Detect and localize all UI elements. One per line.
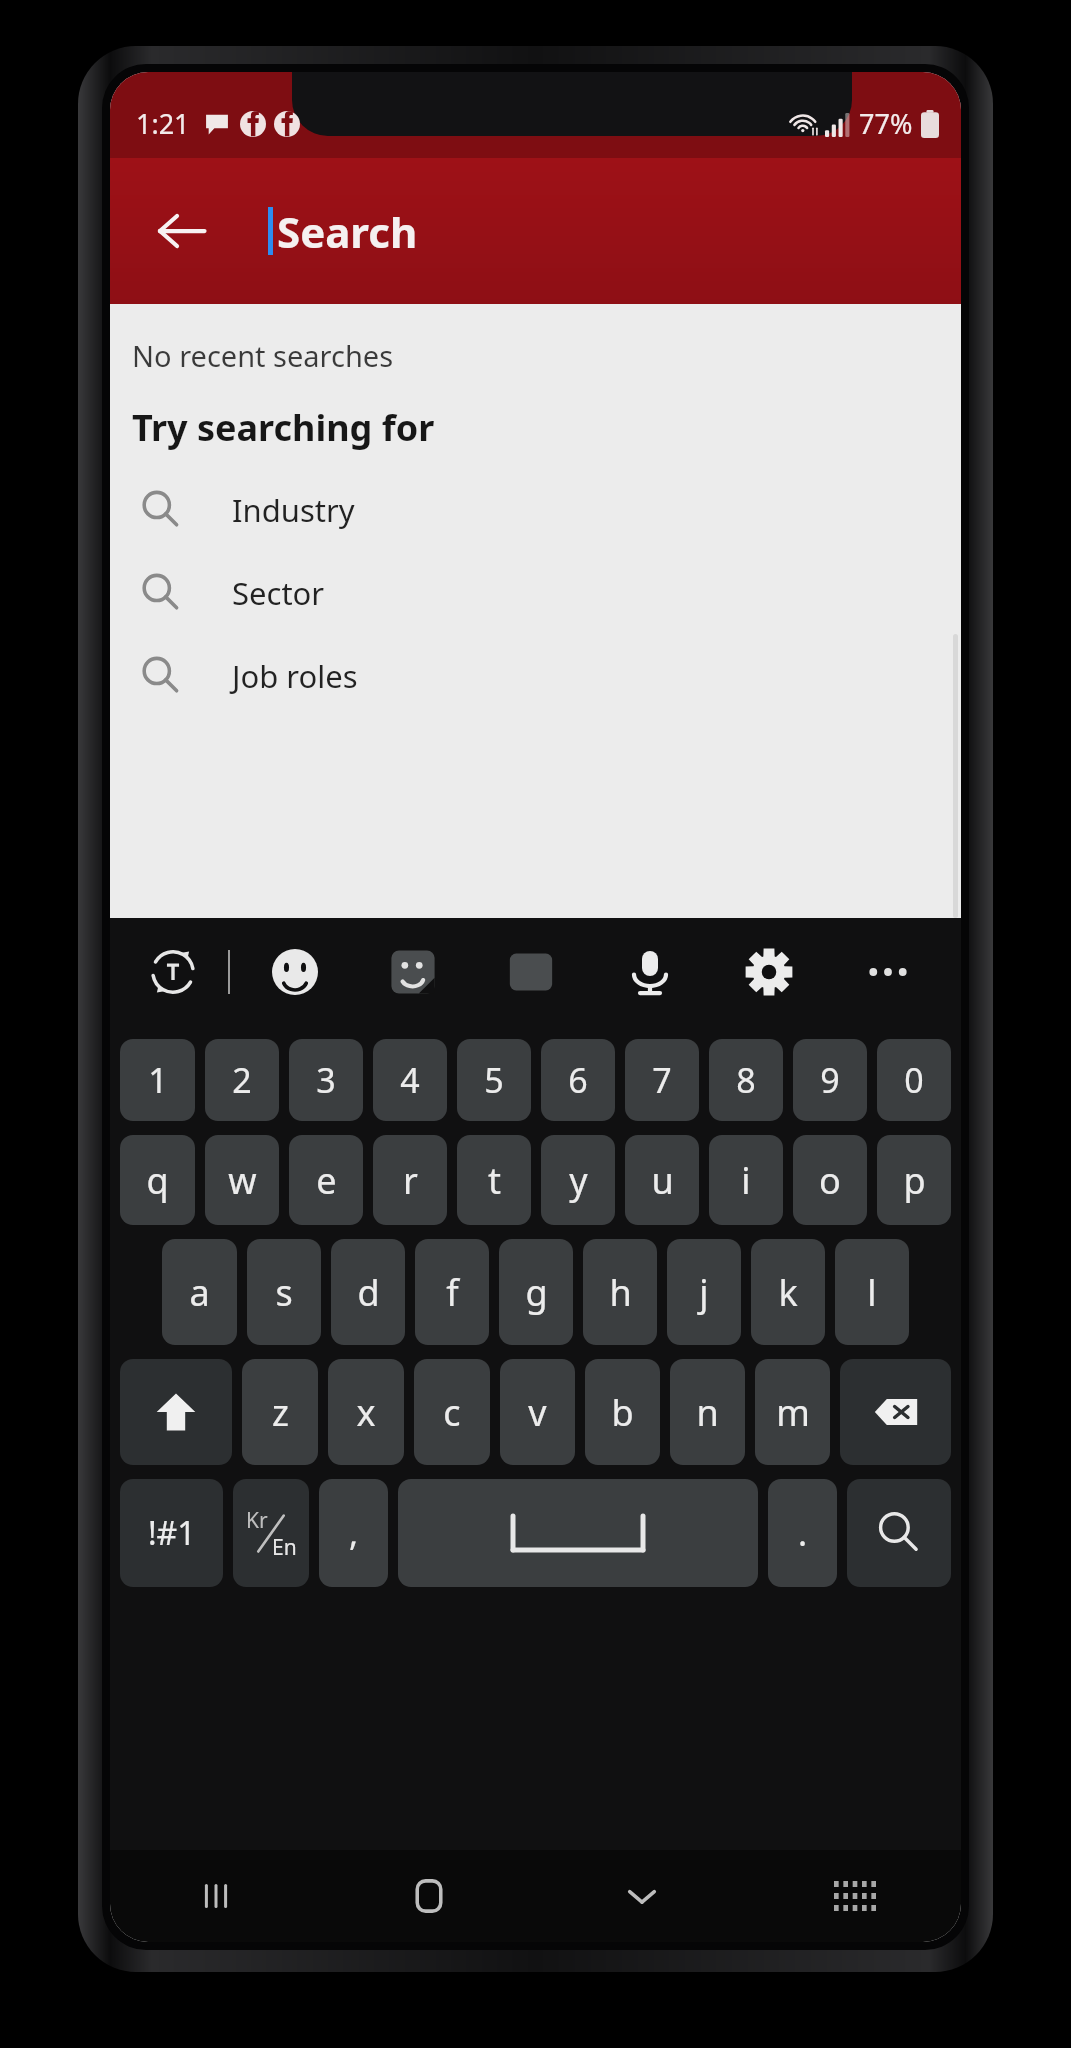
button[interactable]: v [500,1359,575,1465]
button[interactable]: e [289,1135,363,1225]
staticText: u [651,1156,674,1205]
staticText: w [228,1156,257,1205]
button[interactable]: g [499,1239,573,1345]
staticText: y [569,1156,588,1205]
button[interactable]: Emoji [258,935,332,1009]
staticText: h [609,1268,632,1317]
button[interactable]: 8 [709,1039,783,1121]
button[interactable]: z [242,1359,318,1465]
staticText: 3 [316,1057,336,1103]
staticText: 8 [736,1057,756,1103]
staticText: q [146,1156,169,1205]
button[interactable]: y [541,1135,615,1225]
button[interactable]: a [162,1239,237,1345]
staticText: 77% [859,105,913,142]
staticText: m [776,1388,810,1437]
button[interactable]: Change language [233,1479,309,1587]
button[interactable]: o [793,1135,867,1225]
staticText: 2 [232,1057,252,1103]
button[interactable]: GIF [494,935,568,1009]
staticText: l [867,1268,877,1317]
button[interactable]: Job roles [110,634,961,717]
button[interactable]: x [328,1359,404,1465]
staticText: z [272,1388,289,1437]
button[interactable]: Hide keyboard [535,1850,748,1942]
staticText: !#1 [148,1511,196,1555]
button[interactable]: Industry [110,468,961,551]
button[interactable]: More options [851,935,925,1009]
staticText: En [272,1533,297,1562]
staticText: n [696,1388,719,1437]
button[interactable]: s [247,1239,321,1345]
button[interactable]: m [755,1359,830,1465]
staticText: p [903,1156,926,1205]
staticText: Kr [246,1506,268,1535]
button[interactable]: n [670,1359,745,1465]
button[interactable]: 9 [793,1039,867,1121]
button[interactable]: 1 [120,1039,195,1121]
staticText: s [275,1268,293,1317]
button[interactable]: 3 [289,1039,363,1121]
staticText: 5 [484,1057,504,1103]
button[interactable]: q [120,1135,195,1225]
button[interactable]: Keyboard layout [748,1850,961,1942]
button[interactable]: 0 [877,1039,951,1121]
button[interactable]: i [709,1135,783,1225]
staticText: b [611,1388,634,1437]
button[interactable]: Settings [732,935,806,1009]
staticText: e [316,1156,337,1205]
staticText: 9 [820,1057,840,1103]
button[interactable]: Sector [110,551,961,634]
staticText: k [778,1268,798,1317]
staticText: 1 [148,1057,168,1103]
button[interactable]: c [414,1359,490,1465]
button[interactable]: Stickers [376,935,450,1009]
staticText: 6 [568,1057,588,1103]
button[interactable]: r [373,1135,447,1225]
button[interactable]: 6 [541,1039,615,1121]
button[interactable]: t [457,1135,531,1225]
button[interactable]: Recents [110,1850,322,1942]
button[interactable]: b [585,1359,660,1465]
button[interactable]: Key [840,1359,951,1465]
staticText: i [741,1156,751,1205]
button[interactable]: p [877,1135,951,1225]
button[interactable]: j [667,1239,741,1345]
staticText: f [446,1268,459,1317]
staticText: Try searching for [132,403,435,452]
staticText: r [403,1156,418,1205]
button[interactable]: Voice input [613,935,687,1009]
button[interactable]: w [205,1135,279,1225]
button[interactable]: Key [120,1359,232,1465]
button[interactable]: Back [138,187,226,275]
staticText: 0 [904,1057,924,1103]
staticText: No recent searches [132,336,394,375]
button[interactable]: d [331,1239,405,1345]
button[interactable]: f [415,1239,489,1345]
button[interactable]: Key [847,1479,951,1587]
button[interactable]: 2 [205,1039,279,1121]
staticText: d [357,1268,380,1317]
staticText: Job roles [232,655,358,697]
button[interactable]: , [319,1479,388,1587]
button[interactable]: 7 [625,1039,699,1121]
button[interactable]: 5 [457,1039,531,1121]
button[interactable]: Home [322,1850,535,1942]
button[interactable]: . [768,1479,837,1587]
button[interactable]: !#1 [120,1479,223,1587]
button[interactable]: k [751,1239,825,1345]
staticText: . [798,1510,808,1556]
staticText: 4 [400,1057,420,1103]
button[interactable]: l [835,1239,909,1345]
staticText: o [819,1156,841,1205]
staticText: v [528,1388,547,1437]
button[interactable]: u [625,1135,699,1225]
staticText: x [356,1388,376,1437]
button[interactable]: Space [398,1479,758,1587]
staticText: g [525,1268,548,1317]
button[interactable]: Translate [136,935,210,1009]
button[interactable]: 4 [373,1039,447,1121]
staticText: j [699,1268,709,1317]
staticText: Search [277,203,418,260]
button[interactable]: h [583,1239,657,1345]
